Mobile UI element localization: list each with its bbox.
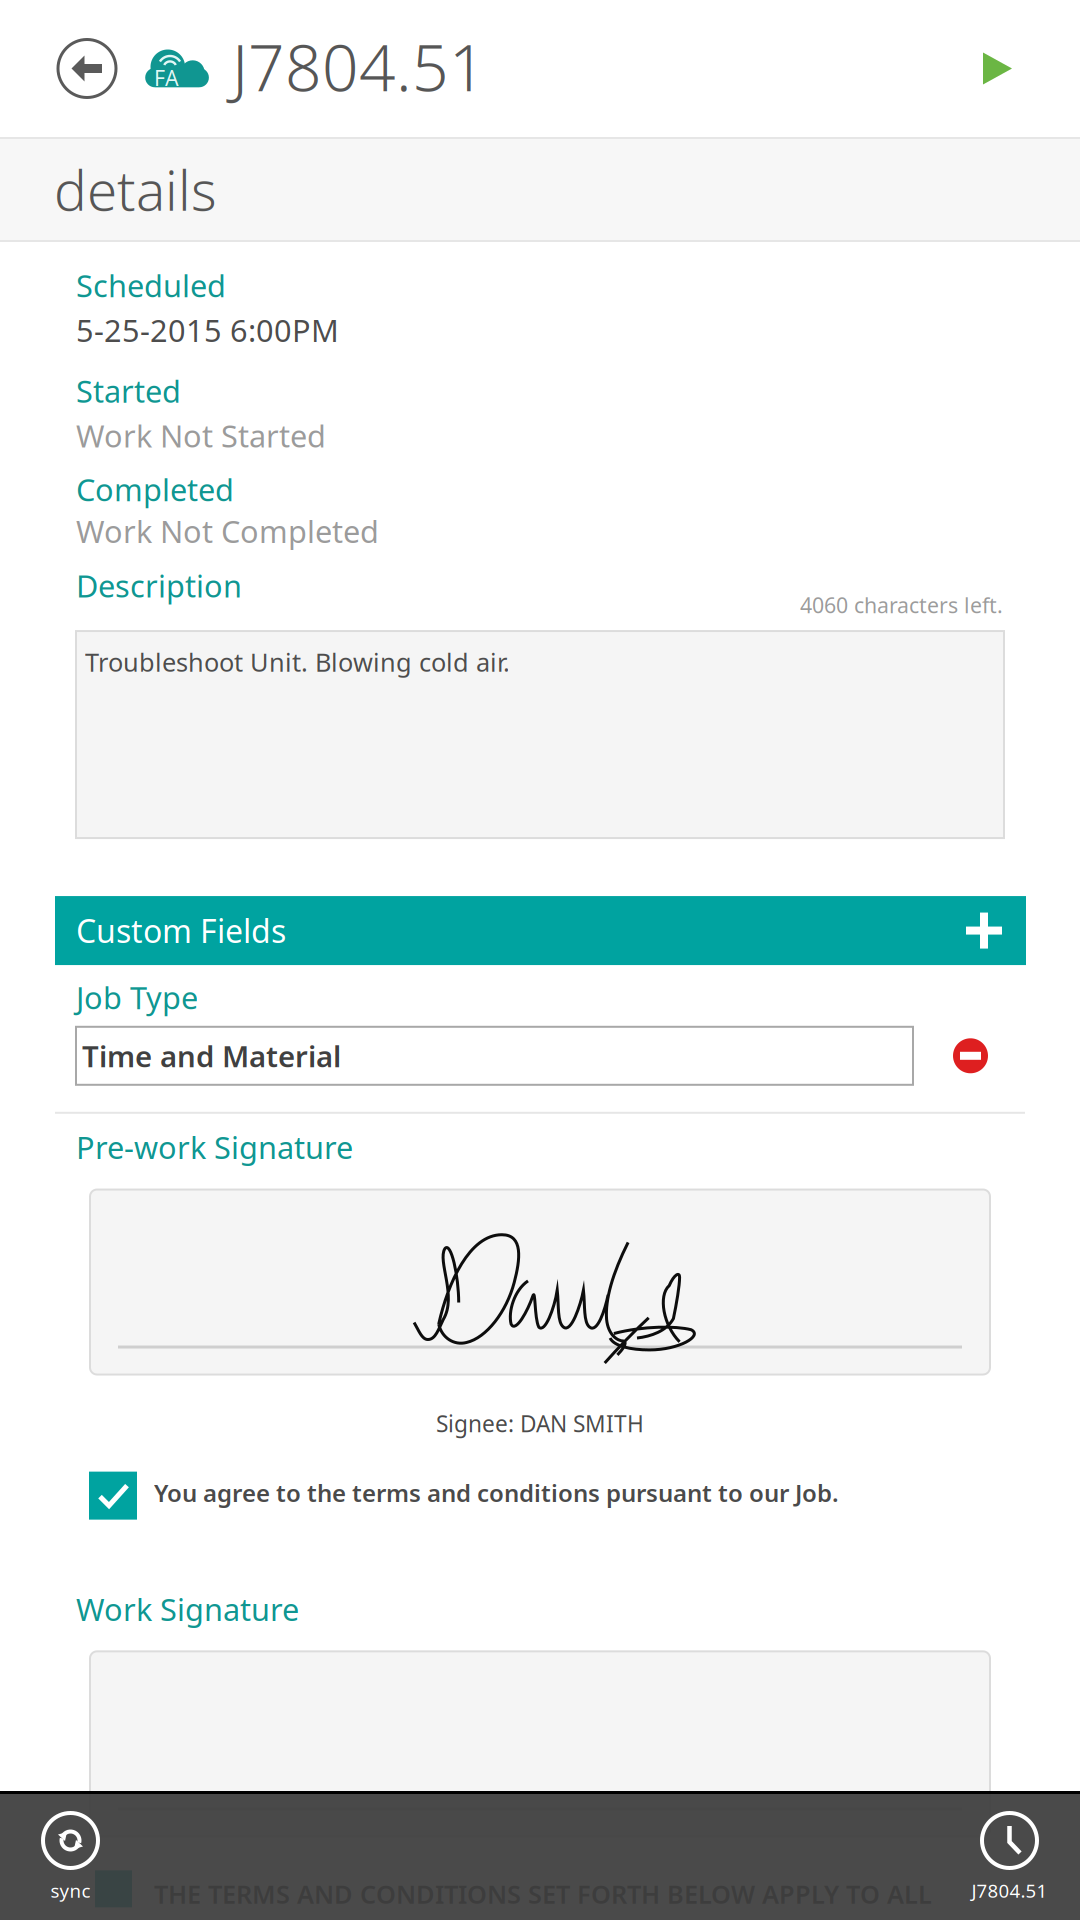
staticText: Time and Material: [82, 1036, 341, 1075]
staticText: THE TERMS AND CONDITIONS SET FORTH BELOW…: [154, 1877, 932, 1911]
button[interactable]: Remove Job Type: [913, 1027, 1028, 1085]
staticText: Troubleshoot Unit. Blowing cold air.: [85, 645, 510, 679]
staticText: Job Type: [76, 977, 198, 1018]
staticText: FA: [154, 63, 179, 92]
button[interactable]: Start job: [953, 0, 1080, 137]
staticText: Signee: DAN SMITH: [436, 1408, 644, 1439]
staticText: 5-25-2015 6:00PM: [76, 310, 339, 350]
button[interactable]: Back: [0, 0, 143, 137]
button[interactable]: Timer for J7804.51: [939, 1775, 1080, 1920]
button[interactable]: sync: [0, 1775, 141, 1920]
staticText: Description: [76, 565, 242, 606]
staticText: Work Not Started: [76, 415, 326, 456]
staticText: Pre-work Signature: [76, 1127, 353, 1167]
staticText: Work Not Completed: [76, 511, 379, 551]
staticText: Work Signature: [76, 1589, 299, 1629]
staticText: Started: [76, 370, 181, 411]
staticText: Custom Fields: [76, 909, 286, 952]
staticText: 4060 characters left.: [800, 591, 1003, 619]
staticText: details: [54, 153, 217, 226]
staticText: sync: [50, 1878, 90, 1903]
staticText: J7804.51: [971, 1878, 1047, 1903]
button[interactable]: Agree to terms and conditions: [89, 1472, 137, 1520]
staticText: You agree to the terms and conditions pu…: [154, 1477, 839, 1509]
staticText: Scheduled: [76, 265, 226, 306]
staticText: J7804.51: [232, 24, 486, 109]
staticText: Completed: [76, 469, 234, 510]
button[interactable]: Add custom field: [942, 896, 1026, 965]
